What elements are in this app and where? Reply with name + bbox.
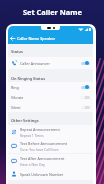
staticText: Vibrate (11, 95, 24, 100)
staticText: Tone: You have Call From (20, 147, 59, 151)
staticText: Text After Announcement (20, 156, 65, 161)
button[interactable]: Toggle Ring (81, 85, 90, 89)
button[interactable]: Back (8, 33, 93, 44)
staticText: Speak Unknown Number (20, 172, 64, 177)
staticText: Other Settings (11, 118, 39, 123)
staticText: On Ringing Status (11, 76, 46, 81)
staticText: Set Caller Name (23, 7, 82, 17)
button[interactable]: Ring (8, 82, 93, 92)
button[interactable]: Toggle Vibrate (81, 95, 90, 99)
other: Back (10, 36, 15, 41)
button[interactable]: Caller Announcer (8, 57, 93, 69)
button[interactable]: Silent (8, 102, 93, 112)
button[interactable]: Text After Announcement (8, 154, 93, 168)
staticText: Caller Name Speaker (17, 36, 55, 41)
staticText: Text Before Announcement (20, 141, 68, 146)
staticText: Caller Announcer (20, 61, 50, 66)
staticText: Ring (11, 85, 19, 90)
staticText: Have a Nice Day (20, 162, 45, 166)
button[interactable]: Speak Unknown Number (8, 168, 93, 180)
button[interactable]: Text Before Announcement (8, 139, 93, 153)
staticText: Repeat 1 Times (20, 133, 44, 137)
button[interactable]: Toggle Silent (81, 105, 90, 109)
staticText: Status (11, 49, 23, 54)
staticText: Silent (11, 105, 21, 110)
button[interactable]: Toggle Caller Announcer (81, 61, 90, 65)
button[interactable]: Vibrate (8, 92, 93, 102)
button[interactable]: Repeat Announcement (8, 125, 93, 139)
staticText: Repeat Announcement (20, 127, 60, 132)
